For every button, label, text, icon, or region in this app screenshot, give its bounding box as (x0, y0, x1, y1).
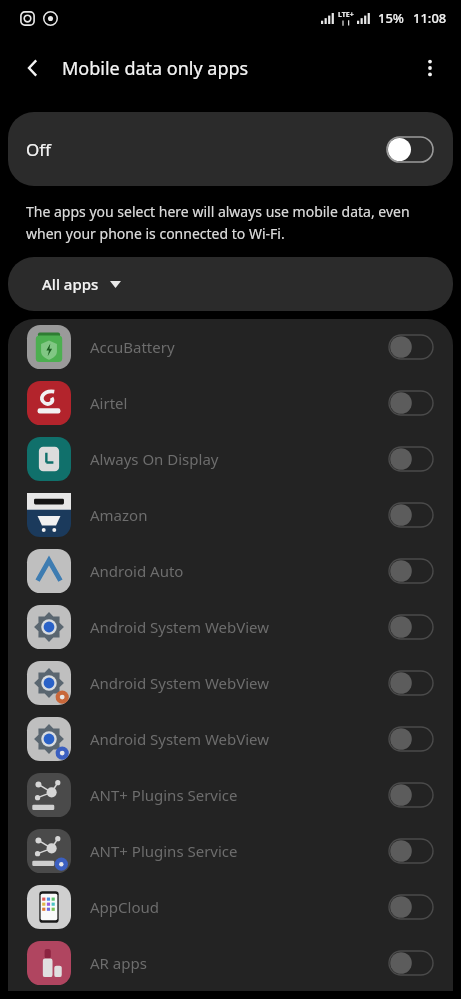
button[interactable]: ANT+ Plugins Service (8, 823, 453, 879)
staticText: AccuBattery (90, 337, 389, 357)
button[interactable]: AR apps (8, 935, 453, 991)
button[interactable]: All apps (8, 257, 453, 311)
staticText: 11:08 (413, 9, 447, 27)
staticText: All apps (42, 274, 99, 294)
staticText: Airtel (90, 393, 389, 413)
staticText: Android System WebView (90, 617, 389, 637)
button[interactable]: Airtel (8, 375, 453, 431)
staticText: ANT+ Plugins Service (90, 841, 389, 861)
button[interactable]: Back (10, 45, 56, 91)
button[interactable]: Android Auto (8, 543, 453, 599)
button[interactable]: Amazon (8, 487, 453, 543)
button[interactable]: Android System WebView (8, 655, 453, 711)
staticText: Android System WebView (90, 729, 389, 749)
staticText: Off (26, 138, 51, 161)
staticText: Always On Display (90, 449, 389, 469)
staticText: 15% (378, 9, 404, 27)
staticText: Mobile data only apps (62, 56, 249, 81)
staticText: Amazon (90, 505, 389, 525)
button[interactable]: Off (8, 112, 453, 186)
button[interactable]: AppCloud (8, 879, 453, 935)
staticText: AppCloud (90, 897, 389, 917)
button[interactable]: Android System WebView (8, 599, 453, 655)
button[interactable]: Android System WebView (8, 711, 453, 767)
button[interactable]: AccuBattery (8, 319, 453, 375)
staticText: Android System WebView (90, 673, 389, 693)
button[interactable]: ANT+ Plugins Service (8, 767, 453, 823)
staticText: The apps you select here will always use… (26, 202, 435, 243)
button[interactable]: More options (407, 45, 453, 91)
staticText: AR apps (90, 953, 389, 973)
staticText: Android Auto (90, 561, 389, 581)
button[interactable]: Always On Display (8, 431, 453, 487)
staticText: ANT+ Plugins Service (90, 785, 389, 805)
staticText: LTE+ (338, 10, 354, 20)
